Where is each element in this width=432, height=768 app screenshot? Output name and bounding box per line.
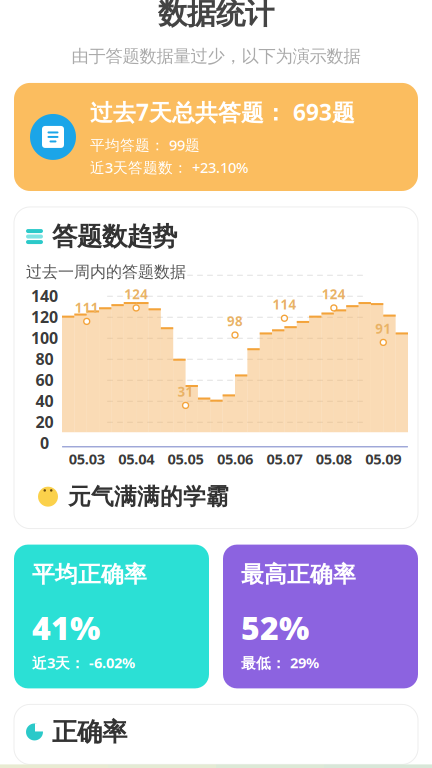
staticText: 52% bbox=[241, 606, 309, 649]
staticText: 80 bbox=[35, 348, 53, 369]
staticText: 05.06 bbox=[217, 449, 253, 468]
staticText: 过去一周内的答题数据 bbox=[26, 262, 186, 282]
staticText: 120 bbox=[31, 306, 58, 327]
staticText: 100 bbox=[31, 327, 58, 348]
staticText: 140 bbox=[31, 285, 58, 306]
staticText: 近3天答题数： +23.10% bbox=[90, 157, 248, 177]
button[interactable]: 过去7天总共答题： 693题 bbox=[14, 83, 418, 191]
staticText: 98 bbox=[227, 312, 243, 330]
staticText: 平均正确率 bbox=[32, 561, 147, 588]
staticText: 40 bbox=[35, 390, 53, 411]
staticText: 元气满满的学霸 bbox=[68, 483, 229, 510]
staticText: 05.07 bbox=[266, 449, 302, 468]
staticText: 平均答题： 99题 bbox=[90, 135, 200, 154]
staticText: 过去7天总共答题： 693题 bbox=[90, 97, 355, 127]
button[interactable]: 最高正确率 bbox=[223, 545, 418, 688]
staticText: 124 bbox=[124, 285, 148, 303]
staticText: 114 bbox=[272, 295, 296, 313]
staticText: 20 bbox=[35, 411, 53, 432]
staticText: 91 bbox=[375, 320, 391, 337]
staticText: 05.03 bbox=[69, 449, 105, 468]
staticText: 05.09 bbox=[365, 449, 401, 468]
staticText: 数据统计 bbox=[158, 0, 274, 32]
staticText: 124 bbox=[322, 285, 346, 303]
staticText: 最低： 29% bbox=[241, 653, 319, 672]
button[interactable]: 统计 bbox=[147, 767, 285, 768]
staticText: 05.05 bbox=[168, 449, 204, 468]
staticText: 正确率 bbox=[52, 716, 127, 747]
staticText: 60 bbox=[35, 369, 53, 390]
staticText: 111 bbox=[75, 299, 99, 316]
staticText: 答题数趋势 bbox=[52, 221, 177, 252]
staticText: 最高正确率 bbox=[241, 561, 356, 588]
staticText: 31 bbox=[178, 383, 194, 400]
staticText: 近3天： -6.02% bbox=[32, 653, 135, 672]
staticText: 05.08 bbox=[316, 449, 352, 468]
staticText: 0 bbox=[40, 432, 49, 453]
staticText: 41% bbox=[32, 606, 100, 649]
staticText: 05.04 bbox=[118, 449, 154, 468]
button[interactable]: 平均正确率 bbox=[14, 545, 209, 688]
staticText: 由于答题数据量过少，以下为演示数据 bbox=[71, 46, 360, 67]
